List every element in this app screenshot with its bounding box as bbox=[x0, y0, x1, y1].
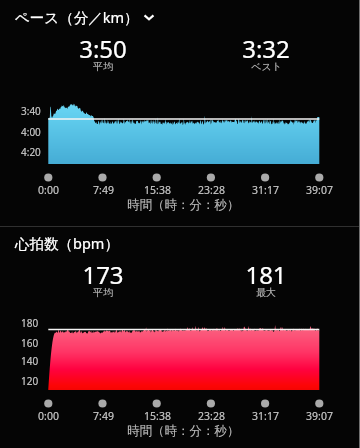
staticText: 4:20 bbox=[21, 145, 41, 159]
staticText: 15:38 bbox=[144, 183, 171, 197]
staticText: 180 bbox=[21, 316, 39, 330]
staticText: 7:49 bbox=[93, 183, 114, 197]
staticText: 140 bbox=[21, 354, 39, 368]
button[interactable]: 心拍数（bpm） bbox=[15, 233, 119, 253]
button[interactable]: Change metric bbox=[139, 7, 159, 27]
staticText: 平均 bbox=[93, 60, 113, 73]
staticText: 15:38 bbox=[144, 409, 171, 423]
staticText: 31:17 bbox=[252, 183, 279, 197]
staticText: 0:00 bbox=[38, 409, 59, 423]
staticText: ペース（分／km） bbox=[15, 7, 139, 27]
staticText: 平均 bbox=[93, 286, 113, 299]
staticText: 39:07 bbox=[306, 409, 333, 423]
staticText: 時間（時：分：秒） bbox=[127, 423, 240, 439]
staticText: 120 bbox=[21, 374, 39, 388]
staticText: 時間（時：分：秒） bbox=[127, 197, 240, 213]
staticText: 0:00 bbox=[38, 183, 59, 197]
staticText: ベスト bbox=[251, 60, 282, 73]
staticText: 4:00 bbox=[21, 125, 41, 139]
staticText: 173 bbox=[82, 258, 124, 291]
staticText: 7:49 bbox=[93, 409, 114, 423]
staticText: 160 bbox=[21, 336, 39, 350]
staticText: 31:17 bbox=[252, 409, 279, 423]
button[interactable]: ペース（分／km） bbox=[15, 7, 139, 27]
staticText: 23:28 bbox=[198, 409, 225, 423]
staticText: 23:28 bbox=[198, 183, 225, 197]
staticText: 3:32 bbox=[242, 32, 290, 65]
staticText: 心拍数（bpm） bbox=[15, 233, 119, 253]
staticText: 最大 bbox=[256, 286, 276, 299]
staticText: 3:40 bbox=[21, 104, 41, 118]
staticText: 39:07 bbox=[306, 183, 333, 197]
staticText: 181 bbox=[245, 258, 287, 291]
staticText: 3:50 bbox=[79, 32, 127, 65]
